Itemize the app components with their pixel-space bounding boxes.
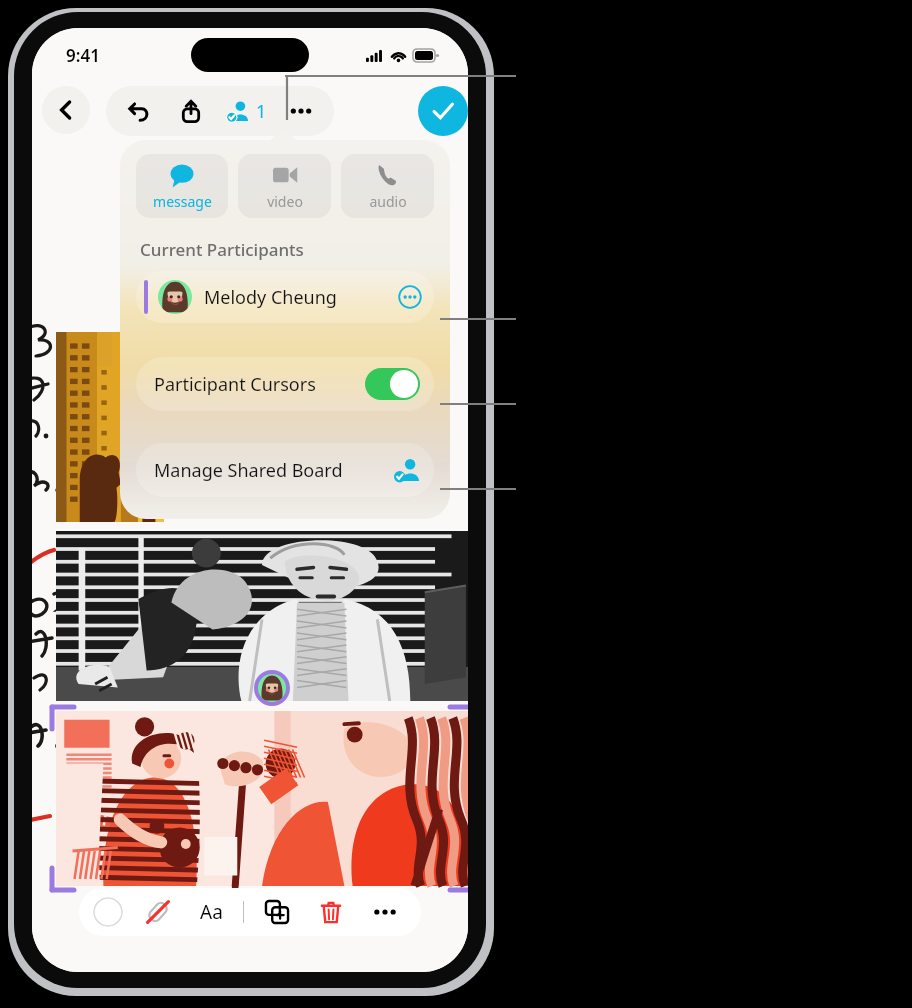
button[interactable]: Manage Shared Board	[136, 443, 434, 497]
button[interactable]: Back	[42, 86, 90, 134]
staticText: Participant Cursors	[154, 372, 316, 397]
staticText: audio	[369, 192, 407, 211]
button[interactable]: Participant options	[396, 283, 424, 311]
button[interactable]: Share	[171, 91, 211, 131]
staticText: Melody Cheung	[204, 285, 337, 310]
button[interactable]	[56, 711, 468, 886]
button[interactable]: Participant Cursors	[136, 357, 434, 411]
staticText: Manage Shared Board	[154, 458, 343, 483]
button[interactable]: 1	[226, 91, 267, 131]
button[interactable]: Melody Cheung	[136, 271, 434, 323]
button[interactable]: audio	[341, 154, 434, 218]
button[interactable]: Aa	[191, 895, 231, 929]
staticText: video	[267, 192, 303, 211]
button[interactable]	[56, 531, 468, 701]
staticText: 9:41	[66, 44, 100, 67]
staticText: 1	[256, 99, 267, 124]
button[interactable]: video	[238, 154, 331, 218]
button[interactable]	[56, 332, 164, 522]
button[interactable]: More options	[281, 91, 321, 131]
button[interactable]: Done	[418, 86, 468, 136]
button[interactable]: Duplicate	[260, 895, 294, 929]
staticText: Current Participants	[140, 238, 304, 261]
button[interactable]: Delete	[314, 895, 348, 929]
button[interactable]: More	[368, 895, 402, 929]
staticText: message	[153, 192, 212, 211]
button[interactable]: Eraser	[141, 895, 175, 929]
button[interactable]	[365, 368, 420, 400]
button[interactable]: Undo	[119, 91, 159, 131]
staticText: Aa	[200, 899, 223, 925]
button[interactable]: message	[136, 154, 228, 218]
button[interactable]: Color	[93, 897, 123, 927]
